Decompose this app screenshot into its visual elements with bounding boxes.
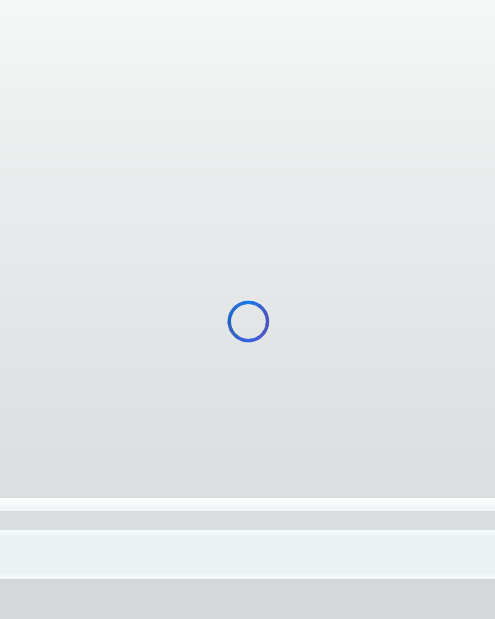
button[interactable]: Toolbar — [0, 498, 495, 511]
